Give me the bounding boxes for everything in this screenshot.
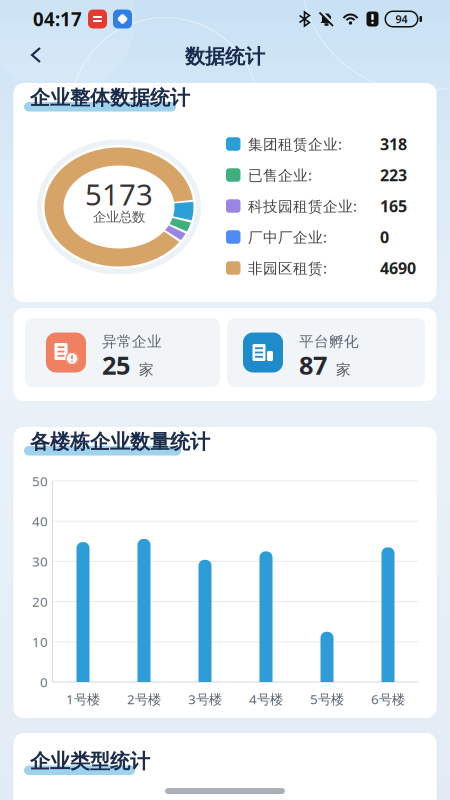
button[interactable]: Back (19, 36, 53, 74)
staticText: 50 (32, 472, 48, 490)
staticText: 平台孵化 (299, 332, 359, 350)
staticText: 04:17 (33, 7, 82, 31)
staticText: 异常企业 (102, 332, 162, 350)
staticText: 40 (32, 512, 48, 530)
staticText: 1号楼 (66, 690, 100, 708)
button[interactable]: 异常企业 (25, 318, 220, 387)
staticText: 厂中厂企业: (248, 227, 327, 247)
staticText: 5号楼 (310, 690, 344, 708)
staticText: 20 (32, 593, 48, 610)
staticText: 87 (299, 348, 327, 382)
button[interactable]: 平台孵化 (227, 318, 425, 387)
staticText: 0 (380, 226, 389, 248)
staticText: 30 (32, 552, 48, 570)
staticText: 6号楼 (371, 690, 405, 708)
staticText: 5173 (85, 174, 153, 213)
staticText: 企业类型统计 (30, 749, 150, 774)
staticText: 家 (336, 361, 351, 379)
staticText: 94 (395, 12, 407, 26)
staticText: 科技园租赁企业: (248, 196, 357, 216)
staticText: 223 (380, 164, 407, 186)
staticText: 非园区租赁: (248, 258, 327, 278)
staticText: 各楼栋企业数量统计 (30, 429, 210, 454)
staticText: 0 (40, 673, 48, 691)
staticText: 家 (139, 361, 154, 379)
staticText: 10 (32, 633, 48, 651)
staticText: 企业整体数据统计 (30, 85, 190, 110)
staticText: 4号楼 (249, 690, 283, 708)
staticText: 企业总数 (93, 209, 145, 225)
staticText: 数据统计 (185, 44, 265, 69)
staticText: 4690 (380, 257, 416, 279)
staticText: 165 (380, 195, 407, 217)
staticText: 25 (102, 348, 130, 382)
staticText: 已售企业: (248, 165, 312, 185)
staticText: 3号楼 (188, 690, 222, 708)
staticText: 集团租赁企业: (248, 134, 342, 154)
staticText: 2号楼 (127, 690, 161, 708)
staticText: 318 (380, 133, 407, 155)
